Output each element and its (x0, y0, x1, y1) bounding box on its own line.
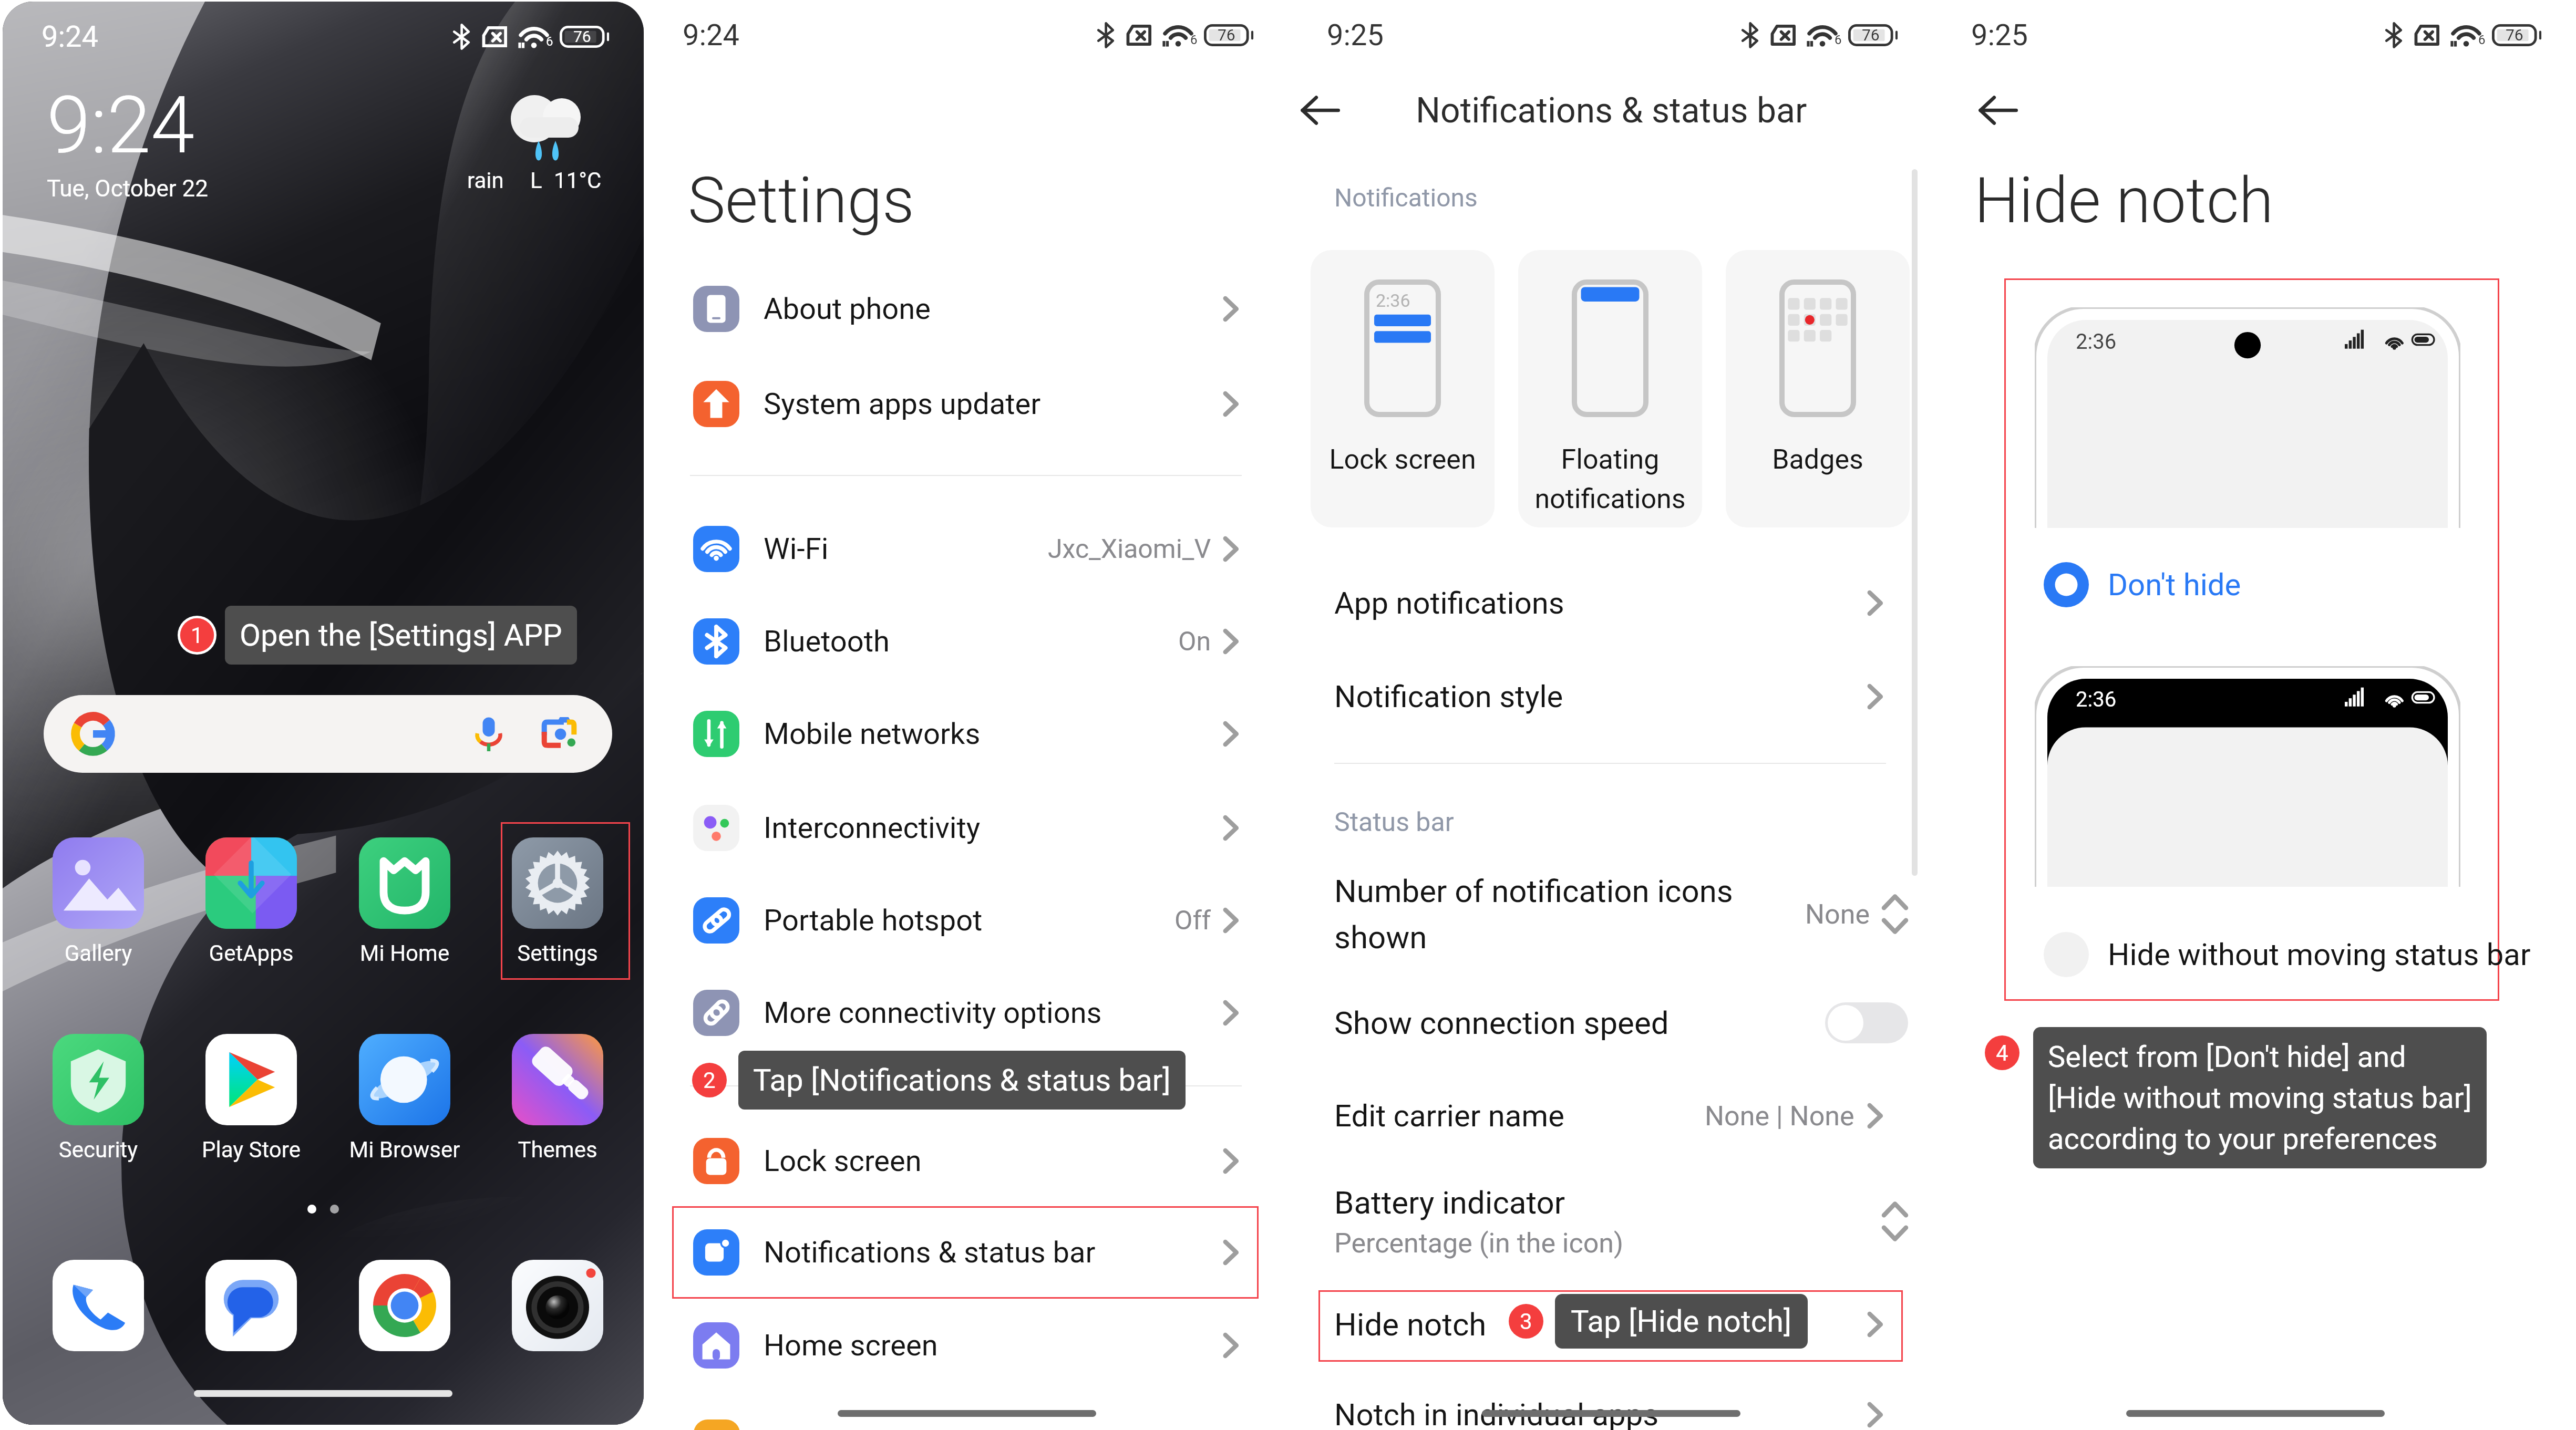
staticText: Floating notifications (1518, 443, 1702, 514)
staticText: 2:36 (2076, 687, 2117, 712)
staticText: 1 (191, 623, 203, 648)
staticText: Mi Browser (328, 1137, 481, 1163)
button[interactable]: Don't hide (2044, 556, 2241, 614)
button[interactable]: Portable hotspot (644, 874, 1288, 967)
button[interactable]: Notifications & status bar (644, 1206, 1288, 1299)
staticText: Percentage (in the icon) (1334, 1227, 1624, 1259)
button[interactable]: About phone (644, 263, 1288, 355)
staticText: Notification style (1334, 679, 1563, 714)
staticText: Themes (481, 1137, 634, 1163)
staticText: Tue, October 22 (47, 175, 209, 202)
button[interactable]: Floating notifications (1518, 250, 1702, 527)
button[interactable]: Interconnectivity (644, 782, 1288, 874)
staticText: 9:24 (42, 19, 98, 54)
button[interactable]: GetApps (175, 837, 327, 966)
staticText: Gallery (22, 940, 174, 966)
button[interactable]: Notch in individual apps (1288, 1369, 1932, 1430)
button[interactable]: Security (22, 1034, 174, 1163)
staticText: Lock screen (1311, 443, 1495, 475)
staticText: Notch in individual apps (1334, 1397, 1659, 1430)
button[interactable]: Number of notification icons shown (1288, 862, 1932, 967)
button[interactable]: Camera (481, 1260, 634, 1351)
button[interactable]: Messages (175, 1260, 327, 1351)
staticText: 9:25 (1327, 18, 1384, 53)
staticText: About phone (764, 292, 1223, 326)
staticText: 9:24 (47, 79, 195, 172)
button[interactable]: Chrome (328, 1260, 481, 1351)
staticText: Security (22, 1137, 174, 1163)
staticText: Notifications (1334, 183, 1478, 212)
staticText: Bluetooth (764, 624, 1178, 659)
staticText: App notifications (1334, 585, 1564, 621)
button[interactable]: Phone (22, 1260, 174, 1351)
button[interactable]: Mi Home (328, 837, 481, 966)
staticText: 4 (1996, 1040, 2008, 1066)
staticText: 11°C (554, 168, 602, 193)
staticText: Settings (481, 940, 634, 966)
button[interactable]: Play Store (175, 1034, 327, 1163)
button[interactable]: Battery indicator (1288, 1169, 1932, 1274)
staticText: 6 (2478, 33, 2486, 47)
staticText: None | None (1705, 1100, 1854, 1132)
staticText: Hide notch (1334, 1306, 1487, 1343)
button[interactable] (44, 695, 612, 773)
staticText: Lock screen (764, 1144, 1223, 1178)
staticText: 2:36 (1376, 290, 1410, 311)
button[interactable]: Gallery (22, 837, 174, 966)
staticText: Hide notch (1974, 164, 2274, 238)
staticText: Jxc_Xiaomi_V (1048, 534, 1211, 565)
button[interactable]: Notification style (1288, 650, 1932, 743)
button[interactable]: More connectivity options (644, 967, 1288, 1059)
button[interactable]: Badges (1726, 250, 1910, 527)
button[interactable]: Mi Browser (328, 1034, 481, 1163)
staticText: Show connection speed (1334, 1004, 1669, 1041)
staticText: 2:36 (2076, 329, 2117, 354)
button[interactable]: Edit carrier name (1288, 1070, 1932, 1162)
button[interactable]: Hide notch (1288, 1278, 1932, 1371)
staticText: 76 (573, 27, 591, 46)
staticText: Don't hide (2108, 567, 2241, 603)
staticText: Notifications & status bar (1416, 90, 1807, 131)
button[interactable]: Back (1288, 79, 1351, 142)
staticText: None (1805, 898, 1870, 930)
staticText: 6 (1190, 33, 1198, 47)
staticText: Tap [Hide notch] (1571, 1303, 1792, 1339)
button[interactable]: Mobile networks (644, 688, 1288, 780)
staticText: Badges (1726, 443, 1910, 475)
staticText: 2 (703, 1068, 716, 1093)
button[interactable]: Back (1966, 79, 2029, 142)
button[interactable]: Home screen (644, 1299, 1288, 1392)
staticText: 6 (546, 34, 553, 49)
button[interactable]: 2:36 (1311, 250, 1495, 527)
staticText: More connectivity options (764, 996, 1223, 1030)
staticText: On (1178, 626, 1211, 657)
button[interactable]: App notifications (1288, 557, 1932, 649)
staticText: Mi Home (328, 940, 481, 966)
button[interactable]: Themes (481, 1034, 634, 1163)
button[interactable]: System apps updater (644, 358, 1288, 450)
staticText: Settings (688, 164, 914, 238)
staticText: System apps updater (764, 387, 1223, 421)
staticText: Notifications & status bar (764, 1235, 1223, 1270)
staticText: Interconnectivity (764, 811, 1223, 845)
button[interactable]: Lock screen (644, 1115, 1288, 1207)
staticText: Status bar (1334, 807, 1454, 838)
staticText: 9:24 (683, 18, 739, 53)
staticText: 76 (2506, 26, 2523, 44)
staticText: Play Store (175, 1137, 327, 1163)
staticText: GetApps (175, 940, 327, 966)
staticText: Mobile networks (764, 717, 1223, 751)
button[interactable]: Settings (481, 837, 634, 966)
button[interactable]: Hide without moving status bar (2044, 926, 2531, 983)
button[interactable]: Wi-Fi (644, 503, 1288, 595)
staticText: Battery indicator (1334, 1184, 1565, 1221)
button[interactable]: Show connection speed (1288, 977, 1932, 1069)
staticText: 9:25 (1971, 18, 2028, 53)
staticText: 3 (1520, 1309, 1532, 1334)
staticText: Home screen (764, 1328, 1223, 1363)
staticText: Hide without moving status bar (2108, 937, 2531, 972)
button[interactable]: Bluetooth (644, 595, 1288, 688)
staticText: 76 (1862, 26, 1880, 44)
staticText: Select from [Don't hide] and [Hide witho… (2048, 1040, 2472, 1156)
staticText: Wi-Fi (764, 532, 1048, 566)
